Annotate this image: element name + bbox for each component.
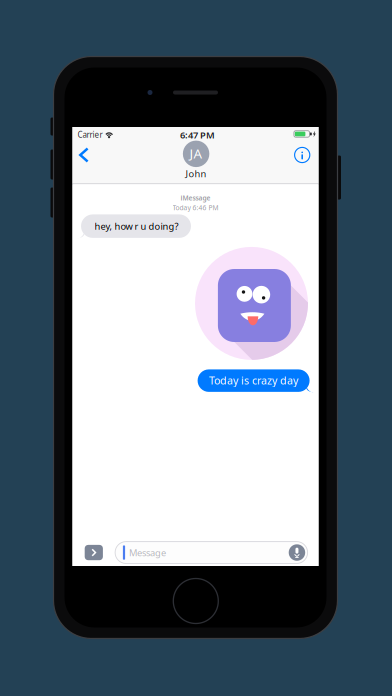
staticText: Message xyxy=(129,546,166,559)
button[interactable]: Back xyxy=(71,141,97,169)
button[interactable]: Apps xyxy=(85,545,103,560)
staticText: JA xyxy=(190,144,203,162)
staticText: Carrier xyxy=(77,129,102,140)
staticText: Today 6:46 PM xyxy=(172,203,218,212)
staticText: Today is crazy day xyxy=(209,373,298,387)
staticText: John xyxy=(186,167,207,180)
staticText: iMessage xyxy=(180,193,210,202)
button[interactable]: Conversation details xyxy=(289,141,315,169)
button[interactable]: Record audio message xyxy=(289,544,305,561)
staticText: hey, how r u doing? xyxy=(94,220,178,232)
staticText: 6:47 PM xyxy=(180,129,215,141)
